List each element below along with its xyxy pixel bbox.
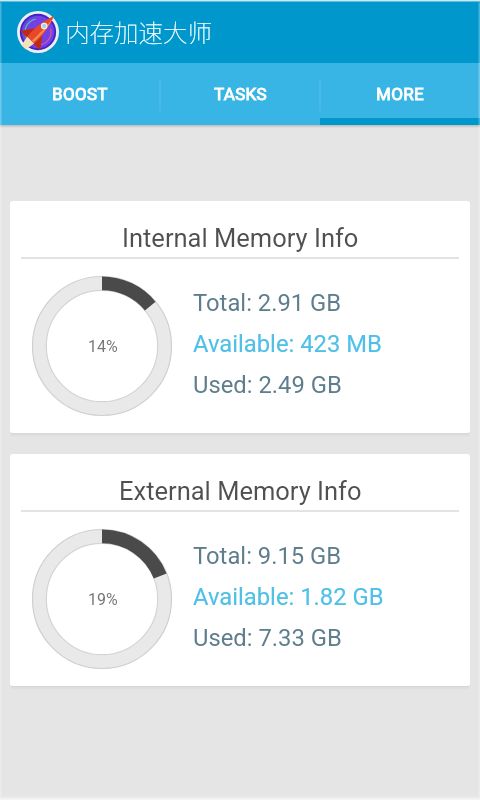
staticText: Available: 1.82 GB bbox=[193, 583, 384, 611]
button[interactable]: BOOST bbox=[0, 63, 160, 125]
button[interactable]: MORE bbox=[320, 63, 480, 125]
button[interactable]: Internal Memory Info bbox=[10, 201, 470, 433]
staticText: 14% bbox=[88, 337, 118, 356]
staticText: 19% bbox=[88, 590, 118, 609]
staticText: TASKS bbox=[214, 84, 267, 104]
staticText: 内存加速大师 bbox=[65, 14, 212, 49]
staticText: Available: 423 MB bbox=[193, 330, 382, 358]
staticText: Used: 2.49 GB bbox=[193, 371, 342, 399]
staticText: Total: 2.91 GB bbox=[193, 289, 342, 317]
staticText: MORE bbox=[376, 84, 424, 104]
button[interactable]: TASKS bbox=[160, 63, 320, 125]
staticText: Internal Memory Info bbox=[122, 223, 359, 253]
button[interactable]: External Memory Info bbox=[10, 454, 470, 686]
staticText: Used: 7.33 GB bbox=[193, 624, 342, 652]
staticText: External Memory Info bbox=[119, 476, 362, 506]
button[interactable]: Memory Booster app icon bbox=[17, 11, 59, 53]
staticText: BOOST bbox=[52, 84, 108, 104]
staticText: Total: 9.15 GB bbox=[193, 542, 342, 570]
